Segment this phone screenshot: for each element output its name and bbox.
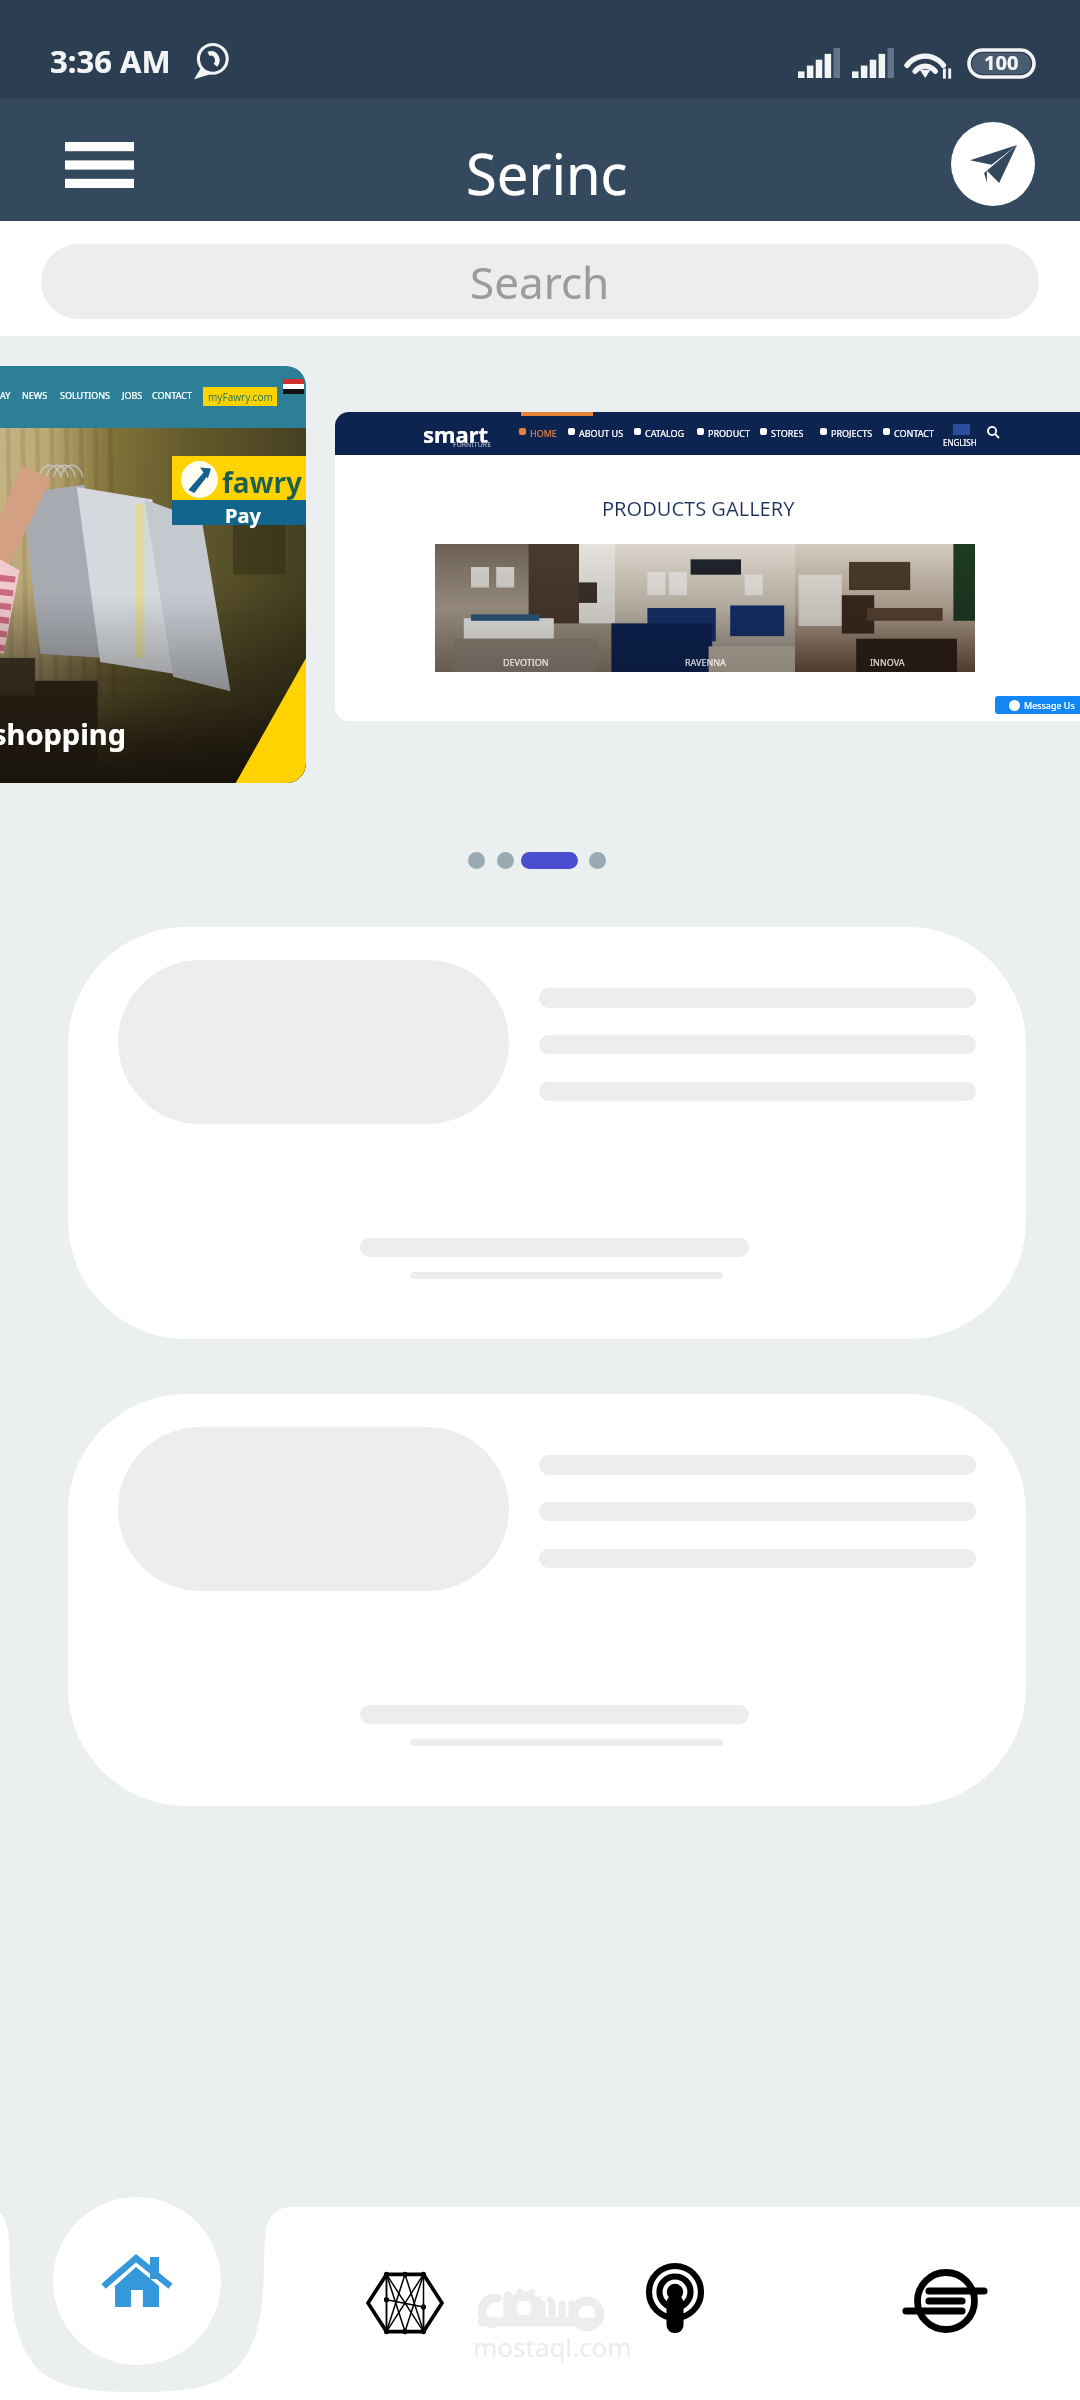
button[interactable] [68, 927, 1026, 1339]
staticText: STORES [771, 427, 804, 439]
staticText: INNOVA [870, 656, 905, 668]
staticText: myFawry.com [208, 390, 273, 404]
staticText: CONTACT [894, 427, 935, 439]
staticText: PRODUCT [708, 427, 750, 439]
staticText: fawry [222, 463, 303, 501]
button[interactable]: Open navigation menu [47, 124, 151, 206]
button[interactable]: Smart Furniture website preview [335, 412, 1080, 721]
staticText: Serinc [466, 135, 628, 211]
button[interactable]: More options [856, 2211, 1036, 2391]
staticText: ABOUT US [579, 427, 624, 439]
staticText: DEVOTION [503, 656, 549, 668]
staticText: 3:36 AM [50, 40, 171, 82]
staticText: PRODUCTS GALLERY [602, 495, 795, 522]
staticText: PROJECTS [831, 427, 873, 439]
staticText: SOLUTIONS [60, 389, 111, 401]
staticText: Message Us [1024, 699, 1075, 711]
staticText: AY [0, 389, 11, 401]
staticText: NEWS [22, 389, 48, 401]
staticText: CONTACT [152, 389, 193, 401]
button[interactable]: Search [41, 244, 1039, 319]
staticText: Pay [225, 502, 261, 529]
staticText: mostaql.com [473, 2329, 632, 2364]
staticText: HOME [530, 427, 557, 439]
staticText: RAVENNA [685, 656, 726, 668]
staticText: ENGLISH [943, 437, 977, 448]
button[interactable] [68, 1394, 1026, 1806]
button[interactable]: Fawry website preview [0, 366, 306, 783]
button[interactable]: Network [315, 2213, 495, 2393]
staticText: FURNITURE [453, 440, 492, 450]
staticText: JOBS [122, 389, 143, 401]
staticText: Search [470, 252, 610, 312]
staticText: CATALOG [645, 427, 685, 439]
button[interactable]: Home [53, 2198, 221, 2366]
staticText: smart [423, 419, 489, 449]
button[interactable]: Send message [951, 122, 1035, 206]
staticText: 100 [984, 49, 1019, 76]
staticText: shopping [0, 714, 127, 753]
button[interactable]: Podcasts [585, 2209, 765, 2389]
